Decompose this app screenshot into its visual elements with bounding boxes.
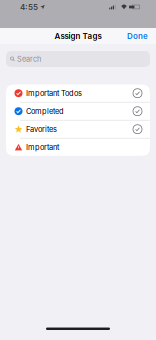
button[interactable]: Search xyxy=(0,44,156,84)
staticText: Favorites xyxy=(26,125,57,134)
button[interactable]: Important xyxy=(6,138,150,156)
staticText: Completed xyxy=(26,107,64,116)
button[interactable]: Favorites xyxy=(6,120,150,138)
staticText: Important xyxy=(26,143,59,152)
staticText: Done xyxy=(127,31,148,41)
button[interactable]: Important Todos xyxy=(6,84,150,102)
staticText: Search xyxy=(17,55,41,63)
staticText: Important Todos xyxy=(26,89,82,98)
button[interactable]: Done xyxy=(124,28,151,44)
staticText: 4:55 xyxy=(20,2,38,12)
button[interactable]: Completed xyxy=(6,102,150,120)
staticText: Assign Tags xyxy=(54,31,101,41)
